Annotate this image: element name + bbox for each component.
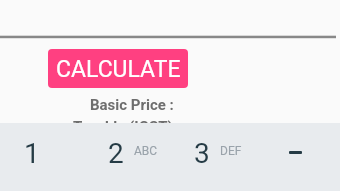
button[interactable]: CALCULATE (48, 49, 188, 88)
staticText: 3 (194, 137, 210, 170)
staticText: Taxable (IGST) : (73, 118, 181, 136)
staticText: 2 (108, 137, 124, 170)
button[interactable]: 2 (85, 123, 170, 181)
staticText: 1 (24, 137, 40, 170)
button[interactable]: 3 (170, 123, 255, 181)
button[interactable]: 1 (0, 123, 85, 181)
button[interactable]: Minus (255, 123, 340, 181)
staticText: Basic Price : (90, 96, 174, 114)
staticText: ABC (134, 144, 158, 158)
staticText: DEF (220, 144, 242, 158)
staticText: CALCULATE (56, 56, 181, 83)
